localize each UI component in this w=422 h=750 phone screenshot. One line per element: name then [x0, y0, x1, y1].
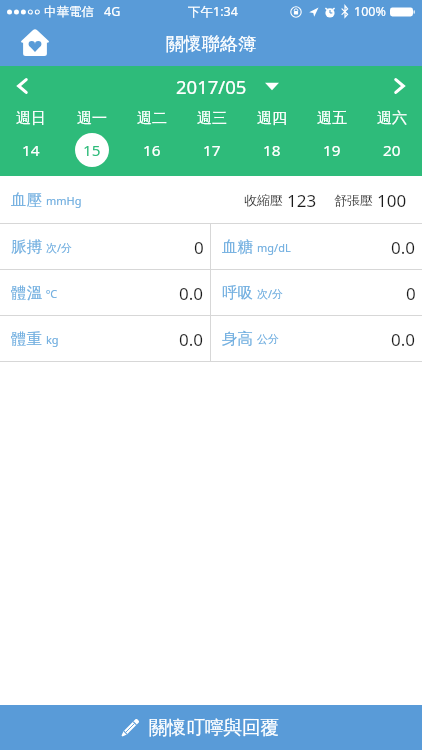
- button[interactable]: 呼吸: [211, 270, 422, 316]
- staticText: 體溫: [11, 283, 42, 303]
- staticText: 次/分: [257, 286, 284, 301]
- staticText: 舒張壓: [334, 192, 373, 208]
- staticText: 0: [406, 282, 416, 305]
- staticText: 19: [323, 140, 341, 161]
- staticText: kg: [46, 332, 59, 347]
- staticText: 關懷叮嚀與回覆: [149, 716, 280, 739]
- staticText: 123: [287, 189, 317, 212]
- button[interactable]: 脈搏: [0, 224, 210, 270]
- staticText: 20: [383, 140, 401, 161]
- button[interactable]: 週六: [362, 106, 422, 176]
- staticText: 0.0: [179, 328, 204, 351]
- button[interactable]: 體重: [0, 316, 210, 362]
- staticText: 呼吸: [222, 283, 253, 303]
- staticText: 16: [143, 140, 161, 161]
- button[interactable]: 身高: [211, 316, 422, 362]
- staticText: 18: [263, 140, 281, 161]
- button[interactable]: 週日: [0, 106, 61, 176]
- staticText: mg/dL: [257, 240, 291, 255]
- button[interactable]: 週一: [61, 106, 122, 176]
- staticText: 週一: [77, 109, 107, 128]
- button[interactable]: 週四: [242, 106, 302, 176]
- staticText: 15: [83, 140, 101, 161]
- staticText: 中華電信: [44, 4, 94, 20]
- staticText: 14: [22, 140, 40, 161]
- button[interactable]: 體溫: [0, 270, 210, 316]
- staticText: 週三: [197, 109, 227, 128]
- staticText: 週五: [317, 109, 347, 128]
- button[interactable]: 關懷叮嚀與回覆: [0, 705, 422, 750]
- button[interactable]: 首頁: [14, 23, 56, 65]
- staticText: mmHg: [46, 193, 82, 208]
- staticText: 週四: [257, 109, 287, 128]
- staticText: 收縮壓: [244, 192, 283, 208]
- staticText: 0: [194, 236, 204, 259]
- staticText: 0.0: [179, 282, 204, 305]
- staticText: 血糖: [222, 237, 253, 257]
- button[interactable]: 血糖: [211, 224, 422, 270]
- staticText: ºC: [46, 286, 58, 301]
- staticText: 週六: [377, 109, 407, 128]
- staticText: 100%: [354, 3, 386, 20]
- staticText: 2017/05: [176, 74, 247, 99]
- staticText: 17: [203, 140, 221, 161]
- staticText: 週二: [137, 109, 167, 128]
- button[interactable]: 血壓: [0, 176, 422, 224]
- staticText: 0.0: [391, 236, 416, 259]
- staticText: 脈搏: [11, 237, 42, 257]
- staticText: 體重: [11, 329, 42, 349]
- button[interactable]: 上一週: [6, 70, 38, 102]
- staticText: 週日: [16, 109, 46, 128]
- staticText: 關懷聯絡簿: [166, 33, 256, 56]
- button[interactable]: 週五: [302, 106, 362, 176]
- staticText: 身高: [222, 329, 253, 349]
- staticText: 血壓: [11, 190, 42, 210]
- button[interactable]: 週二: [122, 106, 182, 176]
- button[interactable]: 週三: [182, 106, 242, 176]
- staticText: 100: [377, 189, 407, 212]
- staticText: 下午1:34: [188, 3, 238, 20]
- button[interactable]: 2017/05: [176, 66, 247, 106]
- staticText: 次/分: [46, 240, 73, 255]
- staticText: 4G: [104, 3, 121, 20]
- button[interactable]: 下一週: [384, 70, 416, 102]
- staticText: 公分: [257, 332, 279, 346]
- staticText: 0.0: [391, 328, 416, 351]
